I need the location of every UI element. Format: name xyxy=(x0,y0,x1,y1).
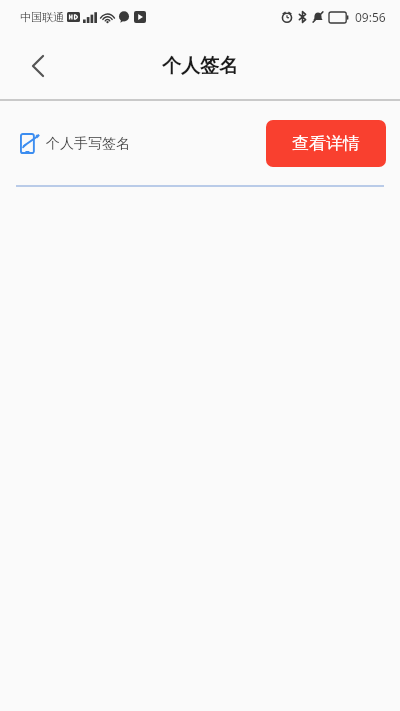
button[interactable]: Back xyxy=(20,48,56,84)
staticText: 查看详情 xyxy=(292,133,360,154)
staticText: 中国联通 xyxy=(20,10,64,24)
staticText: 个人签名 xyxy=(162,54,238,78)
staticText: 个人手写签名 xyxy=(46,135,130,153)
staticText: 09:56 xyxy=(355,9,386,25)
button[interactable]: 查看详情 xyxy=(266,120,386,167)
